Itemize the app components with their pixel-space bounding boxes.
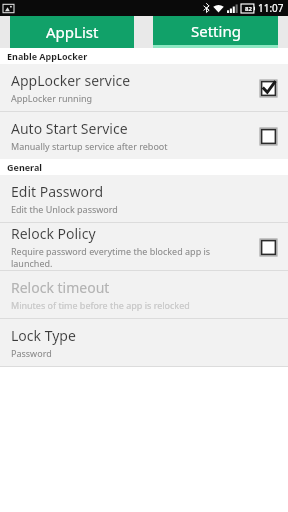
staticText: General bbox=[7, 161, 43, 173]
staticText: Enable AppLocker bbox=[7, 50, 88, 62]
staticText: Password bbox=[11, 347, 52, 359]
staticText: AppLocker service bbox=[11, 71, 131, 90]
staticText: Lock Type bbox=[11, 326, 76, 345]
staticText: Require password everytime the blocked a… bbox=[11, 245, 252, 269]
button[interactable]: Setting bbox=[153, 16, 278, 48]
staticText: Manually startup service after reboot bbox=[11, 140, 168, 152]
staticText: AppLocker running bbox=[11, 92, 93, 104]
staticText: Relock timeout bbox=[11, 278, 110, 297]
button[interactable]: Unchecked bbox=[258, 126, 278, 146]
staticText: Relock Policy bbox=[11, 224, 96, 243]
staticText: Setting bbox=[191, 21, 241, 41]
button[interactable]: AppLocker service bbox=[0, 64, 288, 111]
staticText: 82 bbox=[245, 5, 252, 13]
staticText: 11:07 bbox=[258, 1, 284, 15]
button[interactable]: AppList bbox=[10, 16, 134, 48]
button[interactable]: Relock timeout bbox=[0, 271, 288, 318]
button[interactable]: Unchecked bbox=[258, 237, 278, 257]
button[interactable]: Lock Type bbox=[0, 319, 288, 366]
button[interactable]: Relock Policy bbox=[0, 223, 288, 270]
staticText: Minutes of time before the app is relock… bbox=[11, 299, 190, 311]
button[interactable]: Edit Password bbox=[0, 175, 288, 222]
staticText: AppList bbox=[46, 22, 99, 42]
staticText: Edit the Unlock password bbox=[11, 203, 118, 215]
staticText: Edit Password bbox=[11, 182, 104, 201]
button[interactable]: Auto Start Service bbox=[0, 112, 288, 159]
button[interactable]: Checked bbox=[258, 78, 278, 98]
staticText: Auto Start Service bbox=[11, 119, 128, 138]
